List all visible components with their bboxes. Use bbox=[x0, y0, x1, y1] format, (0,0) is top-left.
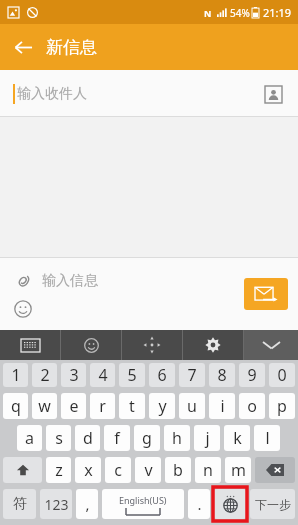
button[interactable]: f bbox=[104, 425, 130, 451]
staticText: t bbox=[129, 395, 135, 417]
button[interactable]: u bbox=[179, 393, 205, 419]
button[interactable]: z bbox=[46, 457, 71, 483]
staticText: 123 bbox=[44, 495, 69, 514]
button[interactable]: b bbox=[165, 457, 191, 483]
button[interactable]: e bbox=[61, 393, 86, 419]
staticText: 54% bbox=[230, 6, 250, 20]
button[interactable]: . bbox=[188, 489, 210, 519]
button[interactable]: 3 bbox=[61, 363, 86, 387]
staticText: s bbox=[55, 427, 63, 449]
staticText: 1 bbox=[11, 364, 21, 386]
button[interactable]: k bbox=[224, 425, 250, 451]
button[interactable]: Change language bbox=[214, 489, 246, 519]
staticText: d bbox=[83, 427, 93, 449]
button[interactable]: p bbox=[269, 393, 295, 419]
staticText: o bbox=[247, 395, 257, 417]
button[interactable]: 1 bbox=[3, 363, 28, 387]
button[interactable]: Backspace bbox=[255, 457, 295, 483]
button[interactable]: English(US) bbox=[102, 489, 184, 519]
button[interactable]: m bbox=[225, 457, 251, 483]
button[interactable]: g bbox=[134, 425, 160, 451]
button[interactable]: a bbox=[17, 425, 42, 451]
button[interactable]: i bbox=[209, 393, 235, 419]
button[interactable]: Attach bbox=[10, 268, 36, 294]
staticText: h bbox=[172, 427, 182, 449]
staticText: 3 bbox=[69, 364, 79, 386]
button[interactable]: , bbox=[76, 489, 98, 519]
staticText: 下一步 bbox=[255, 497, 291, 512]
staticText: 输入收件人 bbox=[17, 85, 87, 103]
button[interactable]: o bbox=[239, 393, 265, 419]
button[interactable]: 8 bbox=[209, 363, 235, 387]
other: Shift bbox=[3, 457, 42, 483]
staticText: 5 bbox=[127, 364, 137, 386]
button[interactable]: Shift bbox=[3, 457, 42, 483]
button[interactable]: 下一步 bbox=[250, 489, 295, 519]
staticText: y bbox=[158, 395, 167, 417]
button[interactable]: w bbox=[32, 393, 57, 419]
staticText: 符 bbox=[13, 495, 27, 513]
button[interactable]: Emoji bbox=[10, 296, 36, 322]
staticText: b bbox=[173, 459, 183, 481]
button[interactable]: keyboard bbox=[0, 330, 60, 360]
button[interactable]: x bbox=[75, 457, 101, 483]
staticText: 7 bbox=[187, 364, 197, 386]
button[interactable]: d bbox=[75, 425, 100, 451]
button[interactable]: 9 bbox=[239, 363, 265, 387]
staticText: g bbox=[142, 427, 152, 449]
staticText: u bbox=[187, 395, 197, 417]
button[interactable]: c bbox=[105, 457, 131, 483]
button[interactable]: r bbox=[90, 393, 115, 419]
staticText: v bbox=[144, 459, 153, 481]
staticText: k bbox=[233, 427, 242, 449]
staticText: 6 bbox=[157, 364, 167, 386]
staticText: j bbox=[205, 427, 210, 449]
staticText: q bbox=[11, 395, 21, 417]
button[interactable]: Back bbox=[0, 24, 46, 70]
staticText: e bbox=[69, 395, 79, 417]
button[interactable]: Send bbox=[244, 278, 288, 310]
button[interactable]: h bbox=[164, 425, 190, 451]
other: Change language bbox=[214, 489, 246, 519]
button[interactable]: Contacts bbox=[258, 79, 288, 109]
staticText: . bbox=[197, 494, 202, 514]
staticText: 21:19 bbox=[263, 5, 292, 20]
button[interactable]: emoji bbox=[61, 330, 121, 360]
button[interactable]: arrows bbox=[122, 330, 182, 360]
button[interactable]: 123 bbox=[40, 489, 72, 519]
button[interactable]: v bbox=[135, 457, 161, 483]
staticText: 0 bbox=[277, 364, 287, 386]
button[interactable]: 符 bbox=[3, 489, 36, 519]
staticText: , bbox=[85, 494, 90, 514]
staticText: m bbox=[231, 459, 246, 481]
button[interactable]: 7 bbox=[179, 363, 205, 387]
staticText: 4 bbox=[98, 364, 108, 386]
staticText: English(US) bbox=[119, 494, 167, 506]
button[interactable]: 4 bbox=[90, 363, 115, 387]
staticText: 输入信息 bbox=[42, 272, 98, 290]
staticText: c bbox=[114, 459, 122, 481]
button[interactable]: 5 bbox=[119, 363, 145, 387]
button[interactable]: 2 bbox=[32, 363, 57, 387]
staticText: i bbox=[220, 395, 225, 417]
staticText: 新信息 bbox=[46, 37, 97, 58]
staticText: N bbox=[204, 7, 212, 19]
button[interactable]: 0 bbox=[269, 363, 295, 387]
staticText: n bbox=[203, 459, 213, 481]
button[interactable]: y bbox=[149, 393, 175, 419]
staticText: z bbox=[55, 459, 63, 481]
staticText: w bbox=[38, 395, 51, 417]
button[interactable]: Hide keyboard bbox=[244, 330, 298, 360]
button[interactable]: 6 bbox=[149, 363, 175, 387]
button[interactable]: s bbox=[46, 425, 71, 451]
staticText: 8 bbox=[217, 364, 227, 386]
staticText: 9 bbox=[247, 364, 257, 386]
button[interactable]: l bbox=[254, 425, 280, 451]
button[interactable]: q bbox=[3, 393, 28, 419]
button[interactable]: n bbox=[195, 457, 221, 483]
button[interactable]: gear bbox=[183, 330, 243, 360]
button[interactable]: t bbox=[119, 393, 145, 419]
staticText: p bbox=[277, 395, 287, 417]
button[interactable]: j bbox=[194, 425, 220, 451]
staticText: a bbox=[25, 427, 34, 449]
